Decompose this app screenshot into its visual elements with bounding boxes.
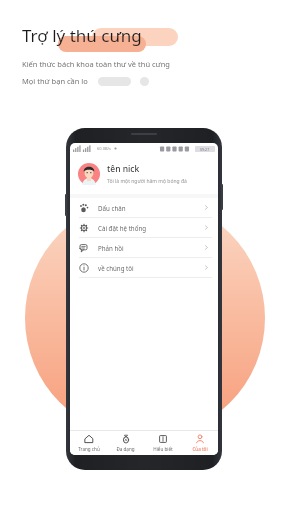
button[interactable]: về chúng tôi	[70, 258, 218, 277]
staticText: Tôi là một người hâm mộ bóng đá	[107, 178, 187, 185]
staticText: Đa dạng	[116, 446, 135, 452]
staticText: tên nick	[107, 163, 140, 175]
button[interactable]: Phản hồi	[70, 238, 218, 257]
button[interactable]: Đa dạng	[107, 431, 144, 455]
button[interactable]: Cài đặt hệ thống	[70, 218, 218, 237]
staticText: Kiến thức bách khoa toàn thư về thú cưng	[22, 59, 170, 69]
staticText: Trang chủ	[78, 446, 100, 452]
button[interactable]: tên nick	[70, 154, 218, 194]
button[interactable]: Hiểu biết	[144, 431, 181, 455]
staticText: Dấu chân	[98, 204, 126, 212]
staticText: Cài đặt hệ thống	[98, 224, 147, 232]
staticText: Mọi thứ bạn cần lo	[22, 76, 88, 86]
staticText: Hiểu biết	[153, 446, 173, 452]
staticText: Phản hồi	[98, 244, 124, 252]
button[interactable]: Dấu chân	[70, 198, 218, 217]
staticText: Của tôi	[192, 446, 208, 452]
staticText: về chúng tôi	[98, 264, 134, 272]
button[interactable]: Của tôi	[181, 431, 218, 455]
staticText: 09:27	[200, 147, 210, 152]
button[interactable]: Trang chủ	[70, 431, 107, 455]
staticText: 60.0B/s	[97, 146, 111, 151]
staticText: Trợ lý thú cưng	[22, 24, 142, 47]
